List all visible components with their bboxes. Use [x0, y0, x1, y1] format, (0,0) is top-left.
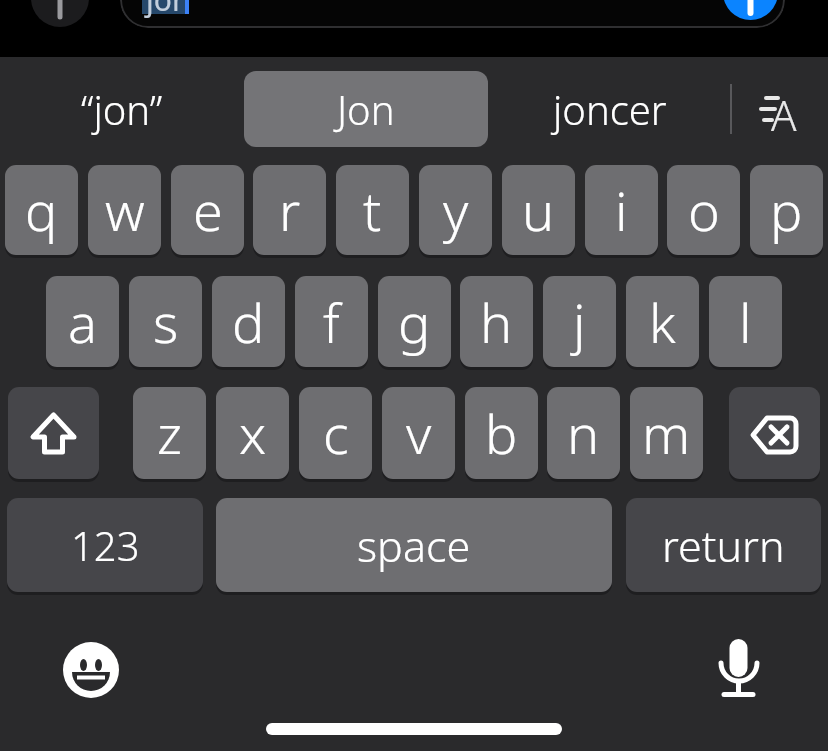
button[interactable]: joncer	[488, 70, 731, 148]
button[interactable]: h	[460, 276, 533, 367]
staticText: b	[485, 396, 518, 470]
staticText: i	[615, 173, 628, 247]
staticText: c	[323, 396, 349, 470]
staticText: Jon	[337, 82, 395, 136]
staticText: e	[193, 173, 223, 247]
staticText: return	[662, 516, 785, 575]
button[interactable]: return	[626, 498, 821, 592]
button[interactable]: i	[585, 165, 658, 255]
staticText: g	[398, 285, 431, 359]
button[interactable]: t	[336, 165, 409, 255]
staticText: d	[232, 285, 265, 359]
staticText: t	[363, 173, 382, 247]
staticText: v	[406, 396, 432, 470]
staticText: q	[25, 173, 58, 247]
button[interactable]: x	[216, 387, 289, 479]
staticText: y	[443, 173, 469, 247]
staticText: h	[480, 285, 513, 359]
button[interactable]: e	[171, 165, 244, 255]
staticText: j	[573, 285, 586, 359]
button[interactable]: k	[626, 276, 699, 367]
button[interactable]: 123	[7, 498, 203, 592]
button[interactable]: “jon”	[0, 70, 244, 148]
button[interactable]: b	[465, 387, 538, 479]
staticText: u	[522, 173, 555, 247]
staticText: space	[357, 516, 471, 575]
staticText: m	[642, 396, 691, 470]
staticText: o	[688, 173, 720, 247]
staticText: l	[739, 285, 752, 359]
button[interactable]: z	[133, 387, 206, 479]
button[interactable]: c	[299, 387, 372, 479]
staticText: A	[771, 86, 797, 143]
button[interactable]	[729, 387, 820, 479]
button[interactable]: a	[46, 276, 119, 367]
staticText: f	[323, 285, 340, 359]
button[interactable]: u	[502, 165, 575, 255]
button[interactable]: o	[667, 165, 740, 255]
staticText: z	[157, 396, 183, 470]
button[interactable]: n	[547, 387, 620, 479]
staticText: “jon”	[81, 82, 163, 136]
staticText: x	[239, 396, 267, 470]
button[interactable]: v	[382, 387, 455, 479]
staticText: s	[153, 285, 179, 359]
staticText: a	[68, 285, 97, 359]
staticText: r	[279, 173, 301, 247]
button[interactable]	[712, 632, 766, 702]
button[interactable]: j	[543, 276, 616, 367]
staticText: k	[649, 285, 676, 359]
staticText: 123	[71, 518, 140, 572]
staticText: n	[567, 396, 600, 470]
button[interactable]	[60, 639, 122, 701]
button[interactable]: d	[212, 276, 285, 367]
button[interactable]	[740, 80, 810, 140]
staticText: p	[770, 173, 803, 247]
button[interactable]: l	[709, 276, 782, 367]
button[interactable]	[31, 0, 89, 27]
button[interactable]: m	[630, 387, 703, 479]
button[interactable]: p	[750, 165, 823, 255]
staticText: joncer	[553, 82, 667, 136]
staticText: jon	[146, 0, 191, 20]
staticText: w	[105, 173, 145, 247]
button[interactable]: f	[295, 276, 368, 367]
button[interactable]	[723, 0, 778, 20]
button[interactable]: r	[253, 165, 326, 255]
button[interactable]: Jon	[244, 71, 488, 147]
button[interactable]: w	[88, 165, 161, 255]
button[interactable]: s	[129, 276, 202, 367]
button[interactable]: g	[378, 276, 451, 367]
button[interactable]: space	[216, 498, 612, 592]
button[interactable]: q	[5, 165, 78, 255]
button[interactable]	[8, 387, 99, 479]
button[interactable]: y	[419, 165, 492, 255]
